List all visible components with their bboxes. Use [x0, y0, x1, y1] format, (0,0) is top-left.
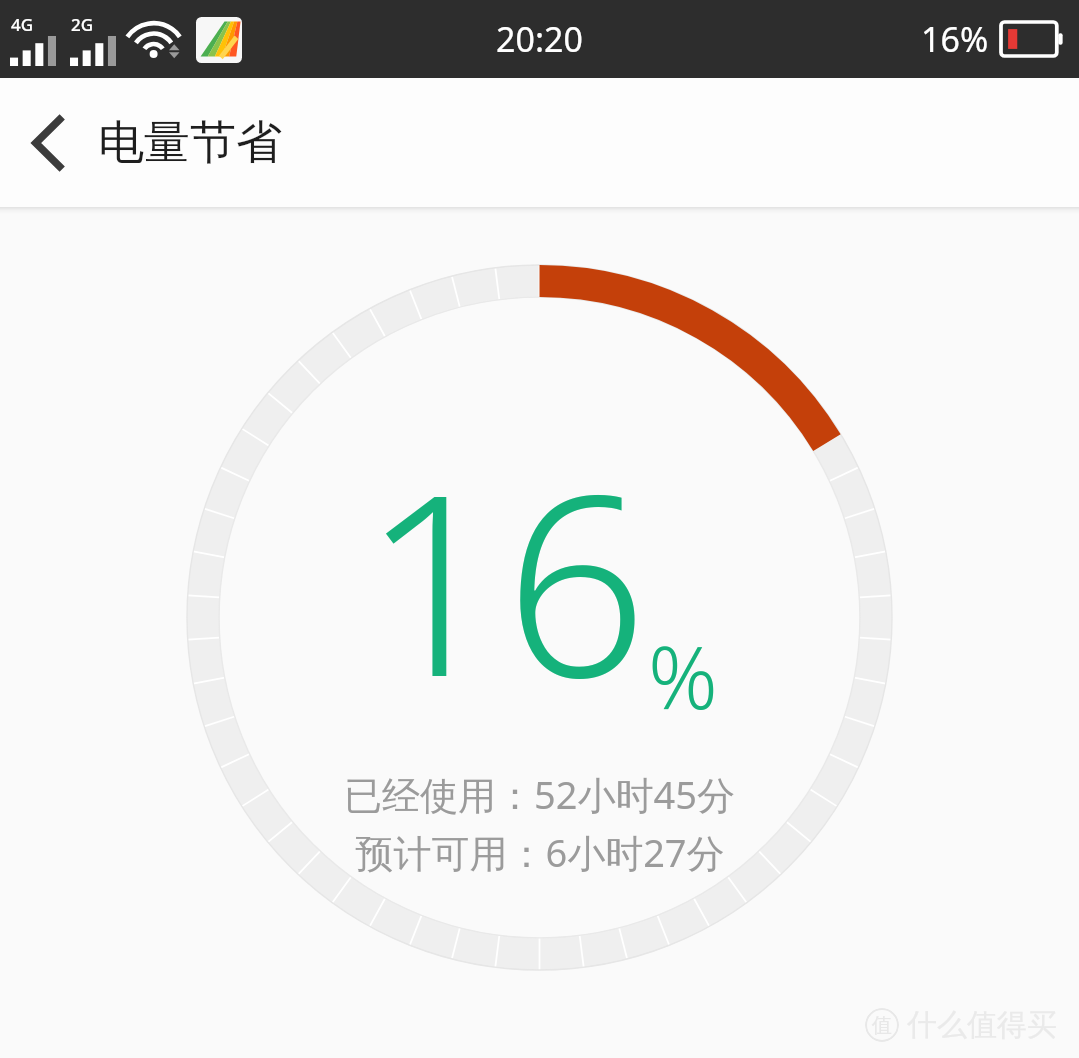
staticText: 预计可用：6小时27分	[355, 826, 725, 878]
staticText: 16%	[921, 16, 989, 62]
staticText: 已经使用：52小时45分	[344, 768, 735, 820]
staticText: 2G	[71, 13, 94, 36]
staticText: 电量节省	[98, 114, 282, 172]
staticText: 20:20	[496, 16, 583, 62]
staticText: 4G	[11, 13, 34, 36]
button[interactable]: Back	[0, 95, 96, 191]
staticText: 值	[872, 1013, 892, 1038]
staticText: %	[648, 617, 718, 734]
staticText: 什么值得买	[907, 1006, 1057, 1044]
staticText: 16	[362, 409, 648, 750]
